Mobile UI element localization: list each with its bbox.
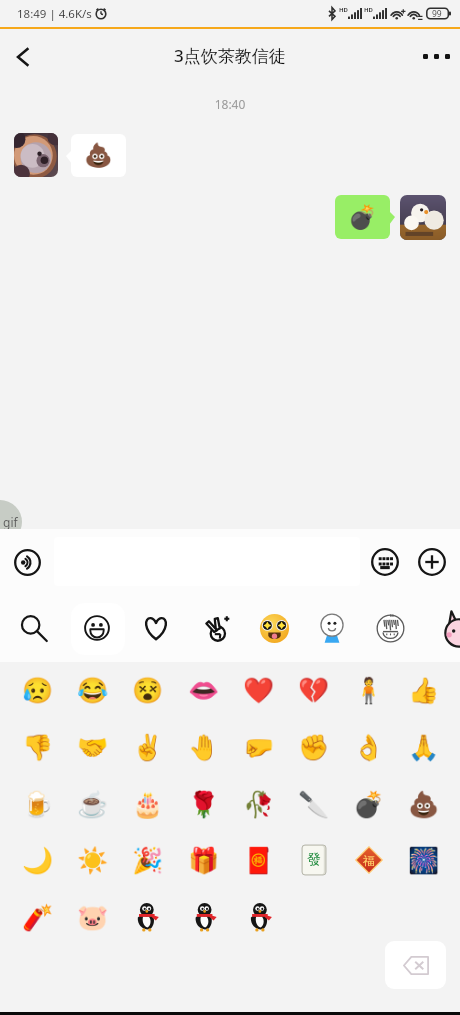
button[interactable]: 🙏	[396, 720, 451, 774]
staticText: 🎁	[188, 846, 220, 875]
staticText: ☕️	[77, 790, 109, 819]
button[interactable]: 🤝	[65, 720, 120, 774]
button[interactable]: 💔	[286, 663, 341, 717]
button[interactable]: 福	[341, 833, 396, 887]
button[interactable]: 🎉	[120, 833, 175, 887]
button[interactable]: 💣	[341, 777, 396, 831]
button[interactable]: More	[418, 548, 446, 576]
button[interactable]: ✊	[286, 720, 341, 774]
staticText: 🤛	[243, 733, 275, 762]
staticText: 🧧	[243, 846, 275, 875]
staticText: 18:49 | 4.6K/s	[17, 6, 92, 22]
staticText: 🎉	[132, 846, 164, 875]
button[interactable]: 🌹	[176, 777, 231, 831]
button[interactable]	[120, 890, 175, 944]
button[interactable]: 🧍	[341, 663, 396, 717]
button[interactable]: GIF	[0, 500, 22, 544]
button[interactable]: 👌	[341, 720, 396, 774]
button[interactable]: 😂	[65, 663, 120, 717]
staticText: 🔪	[298, 790, 330, 819]
button[interactable]: Sticker pack	[363, 594, 417, 662]
button[interactable]: 🥀	[231, 777, 286, 831]
button[interactable]: Voice message	[14, 549, 41, 576]
button[interactable]: Search	[6, 594, 60, 662]
button[interactable]	[176, 890, 231, 944]
staticText: 🙏	[408, 733, 440, 762]
staticText: 😵	[132, 676, 164, 705]
staticText: 99	[432, 8, 442, 20]
staticText: 💣	[348, 204, 377, 231]
staticText: 💩	[408, 790, 440, 819]
button[interactable]: 👍	[396, 663, 451, 717]
button[interactable]: Sticker pack	[247, 594, 301, 662]
button[interactable]: More options	[414, 31, 460, 83]
staticText: 💩	[84, 142, 113, 169]
staticText: 🍺	[22, 790, 54, 819]
staticText: 18:40	[0, 96, 460, 112]
button[interactable]: 🌙	[10, 833, 65, 887]
button[interactable]: 🎁	[176, 833, 231, 887]
button[interactable]: Favourites	[129, 594, 183, 662]
staticText: ✌️	[132, 733, 164, 762]
button[interactable]: 😥	[10, 663, 65, 717]
staticText: 👌	[353, 733, 385, 762]
staticText: gif	[3, 514, 18, 530]
staticText: 💣	[353, 790, 385, 819]
button[interactable]: 🐷	[65, 890, 120, 944]
button[interactable]: ☕️	[65, 777, 120, 831]
staticText: 🐷	[77, 903, 109, 932]
staticText: 👍	[408, 676, 440, 705]
staticText: 🌹	[188, 790, 220, 819]
staticText: ❤️	[243, 676, 275, 705]
button[interactable]: Back	[0, 31, 46, 83]
staticText: 🤚	[188, 733, 220, 762]
staticText: 🧨	[22, 903, 54, 932]
button[interactable]: ❤️	[231, 663, 286, 717]
staticText: 🤝	[77, 733, 109, 762]
staticText: 💔	[298, 676, 330, 705]
button[interactable]: Keyboard	[371, 548, 399, 576]
staticText: 發	[307, 851, 321, 869]
button[interactable]: Sticker pack	[440, 609, 460, 647]
button[interactable]: ☀️	[65, 833, 120, 887]
staticText: 👄	[188, 676, 220, 705]
staticText: 3点饮茶教信徒	[174, 44, 286, 67]
button[interactable]: 🧧	[231, 833, 286, 887]
staticText: 👎	[22, 733, 54, 762]
staticText: ☀️	[77, 846, 109, 875]
staticText: 福	[363, 853, 375, 868]
staticText: HD	[364, 6, 373, 14]
button[interactable]: 發	[286, 833, 341, 887]
button[interactable]: Sticker pack	[190, 594, 244, 662]
staticText: 🌙	[22, 846, 54, 875]
button[interactable]: 👎	[10, 720, 65, 774]
staticText: 🎆	[408, 846, 440, 875]
staticText: 🧍	[353, 676, 385, 705]
staticText: 😥	[22, 676, 54, 705]
staticText: 🎂	[132, 790, 164, 819]
button[interactable]: 💩	[396, 777, 451, 831]
button[interactable]: ✌️	[120, 720, 175, 774]
button[interactable]: 🔪	[286, 777, 341, 831]
button[interactable]: 💩	[71, 134, 126, 177]
staticText: HD	[339, 6, 348, 14]
button[interactable]: 🎂	[120, 777, 175, 831]
staticText: ✊	[298, 733, 330, 762]
button[interactable]	[231, 890, 286, 944]
button[interactable]: 🤛	[231, 720, 286, 774]
button[interactable]: 🧨	[10, 890, 65, 944]
staticText: 🥀	[243, 790, 275, 819]
button[interactable]: 🍺	[10, 777, 65, 831]
button[interactable]: 👄	[176, 663, 231, 717]
button[interactable]: 🤚	[176, 720, 231, 774]
button[interactable]: 🎆	[396, 833, 451, 887]
button[interactable]: Sticker pack	[305, 594, 359, 662]
button[interactable]: Backspace	[385, 941, 446, 989]
staticText: 😂	[77, 676, 109, 705]
button[interactable]: 😵	[120, 663, 175, 717]
button[interactable]: Emoji	[70, 594, 124, 662]
button[interactable]: 💣	[335, 195, 390, 239]
